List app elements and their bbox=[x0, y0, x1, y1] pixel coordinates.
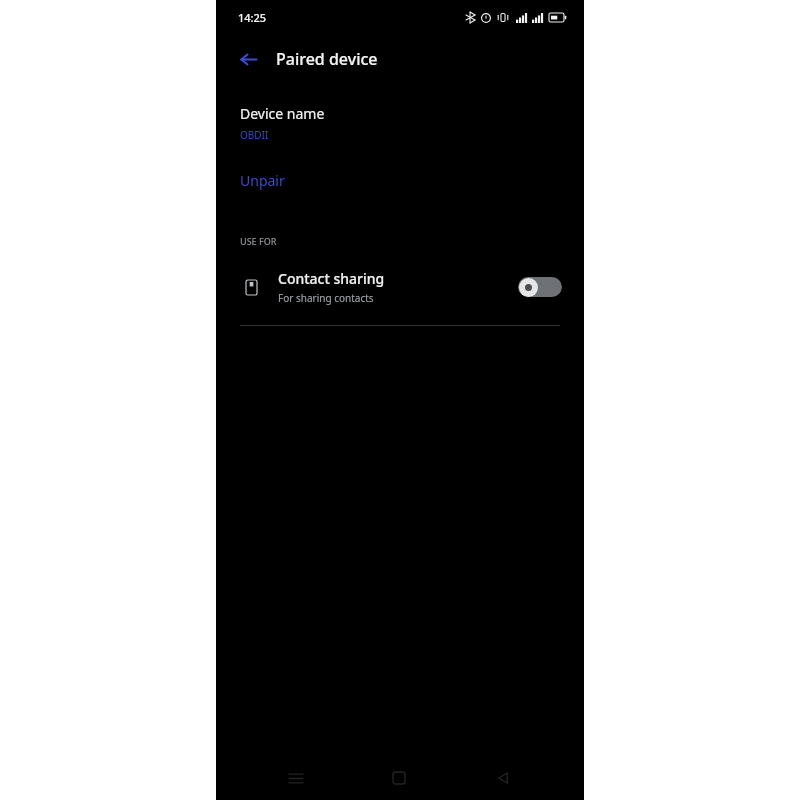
staticText: For sharing contacts bbox=[278, 291, 374, 305]
staticText: Unpair bbox=[240, 171, 285, 190]
button[interactable]: Home bbox=[376, 756, 422, 800]
button[interactable]: Back bbox=[480, 756, 526, 800]
staticText: USE FOR bbox=[240, 235, 277, 247]
staticText: Contact sharing bbox=[278, 269, 385, 288]
staticText: Paired device bbox=[276, 48, 378, 70]
button[interactable]: Contact sharing bbox=[216, 261, 584, 313]
button[interactable]: Recent apps bbox=[273, 756, 319, 800]
button[interactable]: Device name bbox=[216, 102, 584, 144]
staticText: Device name bbox=[240, 104, 325, 123]
staticText: OBDII bbox=[240, 128, 269, 142]
button[interactable]: Back bbox=[228, 39, 268, 79]
button[interactable]: Unpair bbox=[216, 168, 584, 193]
button[interactable]: Contact sharing toggle bbox=[518, 276, 562, 298]
staticText: 14:25 bbox=[238, 10, 267, 25]
